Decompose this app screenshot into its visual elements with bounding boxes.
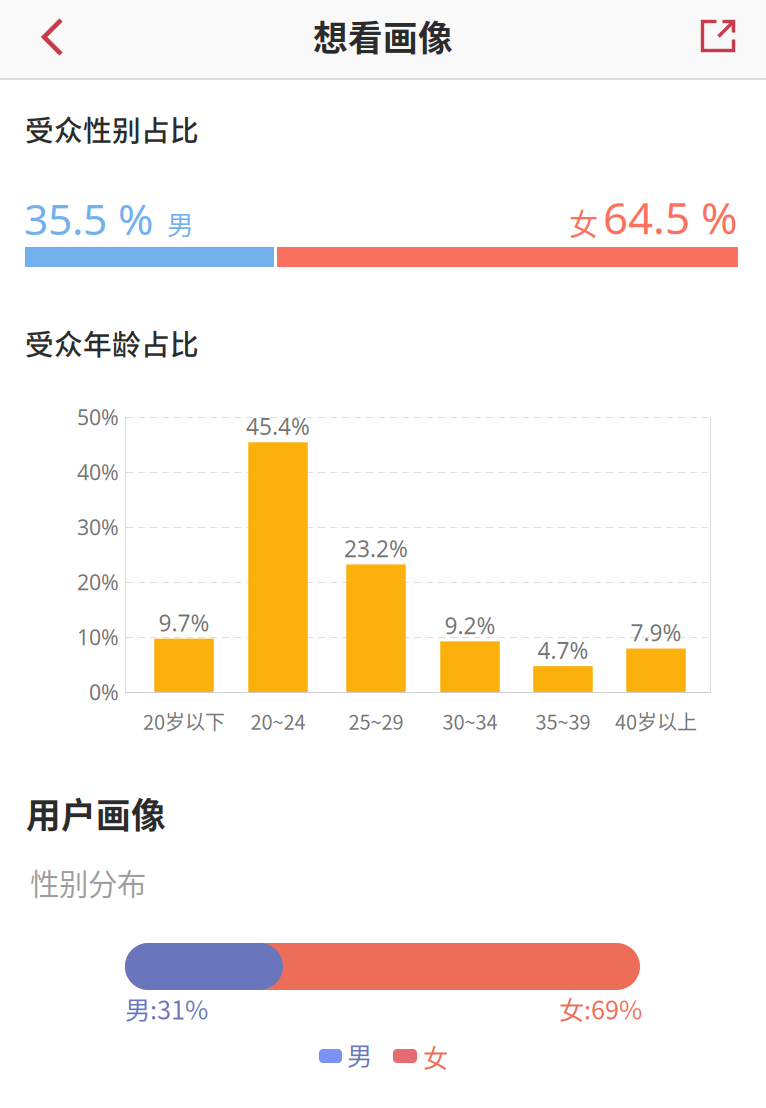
- staticText: 30%: [77, 513, 119, 541]
- staticText: 女: [569, 201, 598, 243]
- staticText: 男: [347, 1036, 372, 1073]
- staticText: 想看画像: [313, 11, 453, 61]
- staticText: 20岁以下: [143, 706, 225, 735]
- staticText: 64.5 %: [603, 188, 738, 246]
- staticText: 50%: [77, 403, 119, 431]
- button[interactable]: Share: [670, 0, 766, 78]
- staticText: 9.7%: [158, 608, 209, 638]
- staticText: 40%: [77, 458, 119, 486]
- staticText: 40岁以上: [615, 706, 697, 735]
- staticText: 受众性别占比: [25, 108, 199, 149]
- staticText: 0%: [89, 678, 119, 706]
- staticText: 9.2%: [444, 610, 495, 640]
- staticText: 受众年龄占比: [25, 322, 199, 363]
- staticText: 用户画像: [26, 788, 166, 838]
- button[interactable]: Back: [0, 0, 100, 78]
- staticText: 20%: [77, 568, 119, 596]
- staticText: 10%: [77, 623, 119, 651]
- staticText: 45.4%: [246, 411, 310, 441]
- staticText: 35~39: [535, 706, 590, 735]
- staticText: 女: [423, 1038, 448, 1075]
- staticText: 性别分布: [30, 861, 146, 903]
- staticText: 20~24: [250, 706, 305, 735]
- staticText: 35.5 %: [24, 190, 153, 247]
- staticText: 男:31%: [125, 990, 208, 1027]
- staticText: 女:69%: [559, 990, 642, 1027]
- staticText: 4.7%: [537, 635, 588, 665]
- staticText: 男: [167, 204, 194, 243]
- staticText: 7.9%: [630, 617, 681, 648]
- staticText: 25~29: [348, 706, 403, 735]
- staticText: 23.2%: [344, 533, 408, 563]
- staticText: 30~34: [442, 706, 497, 735]
